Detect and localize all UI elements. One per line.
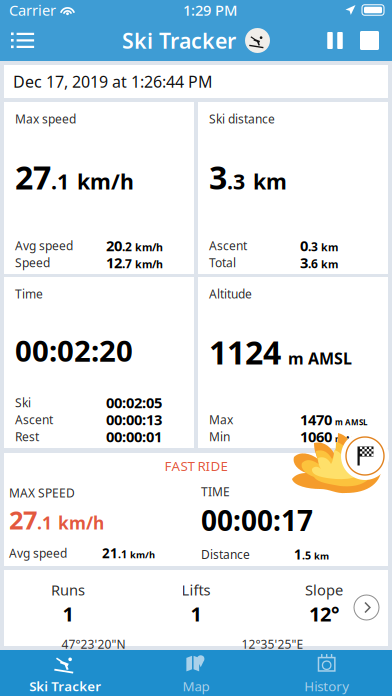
- staticText: 00:02:20: [15, 331, 133, 370]
- staticText: Distance: [201, 546, 250, 562]
- staticText: .1: [118, 547, 127, 561]
- staticText: Ski: [15, 394, 31, 410]
- staticText: 12°: [309, 600, 339, 627]
- staticText: Ascent: [15, 411, 53, 427]
- staticText: Avg speed: [9, 545, 67, 561]
- staticText: m AMSL: [335, 434, 367, 444]
- staticText: 1: [190, 600, 201, 627]
- staticText: MAX SPEED: [9, 485, 75, 501]
- staticText: Slope: [305, 580, 343, 599]
- button[interactable]: History: [261, 646, 392, 696]
- button[interactable]: Stop: [352, 21, 387, 60]
- staticText: Ski distance: [209, 111, 275, 127]
- staticText: .7: [122, 256, 132, 271]
- staticText: Total: [209, 254, 236, 270]
- staticText: Max: [209, 411, 233, 427]
- staticText: 0: [300, 236, 308, 255]
- staticText: 1470: [300, 410, 332, 429]
- staticText: km: [321, 257, 338, 271]
- button[interactable]: Details: [353, 570, 388, 621]
- staticText: Ski Tracker: [29, 677, 101, 695]
- staticText: Ski Tracker: [122, 26, 236, 55]
- staticText: km: [314, 550, 329, 562]
- staticText: 12°35'25"E: [241, 636, 303, 652]
- staticText: FAST RIDE: [164, 457, 227, 475]
- staticText: 3: [209, 156, 227, 198]
- staticText: .1: [51, 167, 69, 195]
- button[interactable]: Map: [131, 646, 261, 696]
- staticText: km: [253, 167, 287, 195]
- staticText: Speed: [15, 254, 50, 270]
- staticText: 1060: [300, 427, 332, 446]
- staticText: km/h: [77, 167, 134, 195]
- staticText: 00:00:13: [106, 410, 162, 429]
- staticText: m AMSL: [335, 417, 367, 427]
- staticText: Ascent: [209, 237, 247, 253]
- staticText: Altitude: [209, 286, 252, 302]
- staticText: km/h: [135, 257, 163, 271]
- staticText: 12: [106, 253, 122, 272]
- staticText: 00:00:01: [106, 427, 162, 446]
- staticText: km/h: [130, 548, 155, 561]
- staticText: 27: [9, 503, 37, 536]
- staticText: km/h: [135, 240, 163, 254]
- staticText: .6: [308, 256, 318, 271]
- staticText: km/h: [58, 511, 104, 534]
- staticText: Rest: [15, 428, 39, 444]
- staticText: km: [321, 240, 338, 254]
- staticText: 1:29 PM: [183, 0, 237, 20]
- button[interactable]: Menu: [0, 20, 45, 60]
- staticText: History: [304, 677, 349, 695]
- staticText: Lifts: [181, 580, 210, 599]
- staticText: 20: [106, 236, 122, 255]
- staticText: 00:02:05: [106, 393, 162, 412]
- staticText: Min: [209, 428, 230, 444]
- staticText: 21: [102, 544, 118, 562]
- staticText: .1: [37, 511, 52, 534]
- staticText: 47°23'20"N: [61, 636, 125, 652]
- staticText: TIME: [201, 484, 230, 500]
- staticText: .5: [302, 548, 311, 562]
- staticText: 27: [15, 156, 51, 198]
- staticText: Dec 17, 2019 at 1:26:44 PM: [13, 71, 213, 92]
- staticText: 00:00:17: [201, 502, 313, 539]
- staticText: Avg speed: [15, 237, 73, 253]
- staticText: Time: [15, 286, 43, 302]
- staticText: .2: [122, 239, 132, 254]
- staticText: Map: [182, 677, 209, 695]
- button[interactable]: Ski Tracker: [0, 646, 131, 696]
- button[interactable]: Pause: [318, 21, 352, 60]
- staticText: Runs: [51, 580, 85, 599]
- staticText: Carrier: [9, 0, 56, 20]
- staticText: Max speed: [15, 111, 76, 127]
- staticText: 1: [62, 600, 73, 627]
- staticText: .3: [308, 239, 318, 254]
- staticText: 1: [294, 545, 302, 563]
- staticText: 3: [300, 253, 308, 272]
- staticText: m AMSL: [288, 348, 352, 369]
- staticText: .3: [227, 167, 245, 195]
- staticText: 1124: [209, 331, 281, 373]
